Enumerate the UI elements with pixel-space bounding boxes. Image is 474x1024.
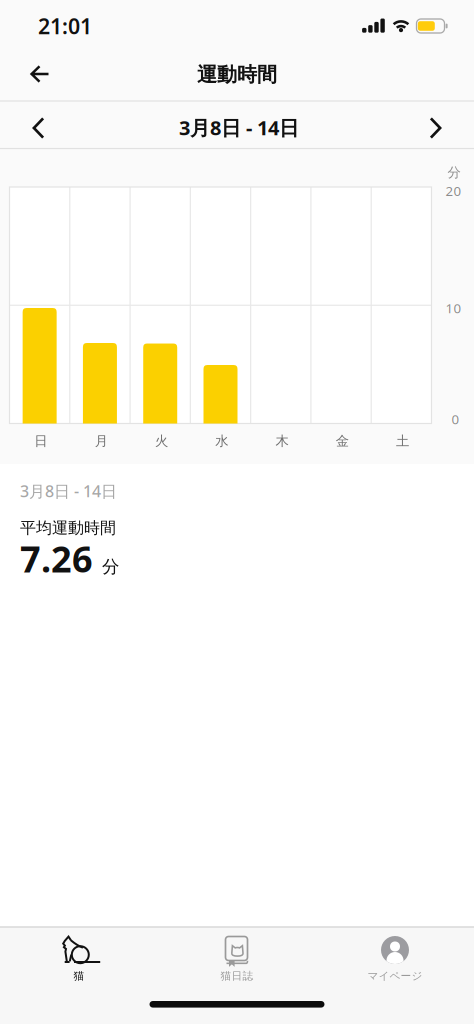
- button[interactable]: Next week: [413, 106, 457, 150]
- staticText: 21:01: [38, 12, 92, 40]
- staticText: 運動時間: [197, 62, 277, 87]
- button[interactable]: Previous week: [16, 106, 60, 150]
- staticText: 月: [95, 433, 108, 449]
- staticText: 平均運動時間: [20, 518, 116, 538]
- staticText: 猫日誌: [220, 969, 253, 982]
- staticText: 7.26: [20, 535, 93, 582]
- staticText: マイページ: [367, 969, 422, 982]
- staticText: 金: [336, 433, 349, 449]
- button[interactable]: 猫日誌: [158, 927, 316, 1023]
- button[interactable]: Back: [18, 52, 62, 96]
- staticText: 0: [451, 410, 459, 428]
- staticText: 3月8日 - 14日: [179, 114, 299, 141]
- staticText: 10: [445, 299, 461, 317]
- staticText: 木: [275, 433, 288, 449]
- staticText: 猫: [73, 969, 84, 982]
- staticText: 水: [215, 433, 228, 449]
- staticText: 3月8日 - 14日: [20, 480, 117, 502]
- staticText: 分: [102, 556, 119, 577]
- staticText: 火: [155, 433, 168, 449]
- staticText: 分: [447, 164, 460, 181]
- staticText: 土: [396, 433, 409, 449]
- staticText: 日: [34, 433, 47, 449]
- staticText: 20: [445, 182, 461, 200]
- button[interactable]: マイページ: [316, 927, 474, 1023]
- button[interactable]: 猫: [0, 927, 158, 1023]
